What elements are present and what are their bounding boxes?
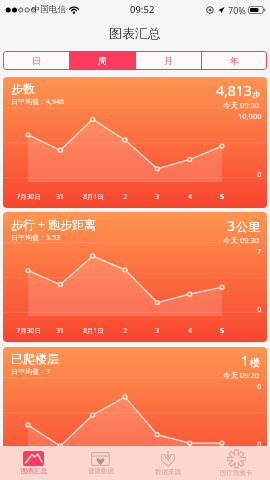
staticText: 月 bbox=[164, 55, 173, 66]
staticText: 3 bbox=[227, 216, 236, 235]
staticText: 公里 bbox=[236, 219, 260, 234]
staticText: 医疗急救卡 bbox=[220, 469, 253, 477]
button[interactable]: Medical ID bbox=[202, 446, 270, 480]
staticText: 今天 09:30 bbox=[223, 100, 260, 110]
staticText: 中国电信 bbox=[32, 4, 66, 15]
staticText: 31 bbox=[56, 192, 64, 201]
staticText: 今天 09:20 bbox=[223, 370, 260, 380]
button[interactable]: 日 bbox=[3, 51, 69, 70]
staticText: 4,813 bbox=[216, 81, 252, 100]
staticText: 2 bbox=[123, 326, 127, 335]
staticText: 0 bbox=[257, 439, 262, 449]
staticText: 3 bbox=[155, 326, 159, 335]
staticText: 步行 + 跑步距离 bbox=[11, 216, 97, 232]
staticText: 09:52 bbox=[130, 3, 155, 16]
staticText: 0 bbox=[257, 304, 262, 314]
button[interactable]: 月 bbox=[136, 51, 201, 70]
staticText: 8月1日 bbox=[83, 462, 104, 471]
staticText: 31 bbox=[56, 326, 64, 335]
button[interactable]: 周 bbox=[70, 51, 135, 70]
button[interactable]: 步行 + 跑步距离 bbox=[3, 212, 267, 342]
staticText: 日 bbox=[32, 55, 41, 66]
staticText: 7月30日 bbox=[16, 192, 41, 201]
staticText: 图表汇总 bbox=[109, 25, 161, 41]
button[interactable]: 年 bbox=[202, 51, 267, 70]
staticText: 步 bbox=[252, 89, 260, 99]
staticText: 7月30日 bbox=[16, 326, 41, 335]
staticText: 4 bbox=[188, 326, 192, 335]
button[interactable]: 已爬楼层 bbox=[3, 347, 267, 478]
staticText: 日平均值：3 bbox=[11, 367, 51, 377]
staticText: 楼 bbox=[250, 356, 260, 369]
button[interactable]: 步数 bbox=[3, 77, 267, 208]
button[interactable]: Charts summary bbox=[0, 446, 67, 480]
staticText: 数据来源 bbox=[155, 468, 181, 476]
staticText: 5 bbox=[220, 462, 224, 471]
staticText: 4 bbox=[188, 192, 192, 201]
staticText: 日平均值：4,946 bbox=[11, 97, 64, 107]
staticText: 1 bbox=[241, 351, 250, 370]
staticText: 5 bbox=[220, 192, 224, 201]
staticText: 3 bbox=[155, 192, 159, 201]
staticText: 6 bbox=[257, 381, 262, 391]
staticText: 8月1日 bbox=[83, 192, 104, 201]
staticText: 8月1日 bbox=[83, 326, 104, 335]
staticText: 2 bbox=[123, 192, 127, 201]
staticText: 3 bbox=[155, 462, 159, 471]
staticText: 年 bbox=[230, 55, 239, 66]
staticText: 7月30日 bbox=[16, 462, 41, 471]
staticText: 7 bbox=[257, 246, 262, 256]
staticText: 今天 09:30 bbox=[223, 235, 260, 245]
staticText: 图表汇总 bbox=[21, 467, 47, 475]
staticText: 0 bbox=[257, 169, 262, 179]
staticText: 已爬楼层 bbox=[11, 351, 59, 366]
staticText: 周 bbox=[98, 55, 107, 66]
staticText: 70% bbox=[228, 4, 246, 16]
button[interactable]: Health data bbox=[67, 446, 134, 480]
staticText: 步数 bbox=[11, 81, 35, 96]
staticText: 10,000 bbox=[238, 111, 262, 121]
staticText: 日平均值：3.53 bbox=[11, 233, 60, 243]
button[interactable]: Data sources bbox=[134, 446, 202, 480]
staticText: 5 bbox=[220, 326, 224, 335]
staticText: 健康数据 bbox=[88, 467, 114, 475]
